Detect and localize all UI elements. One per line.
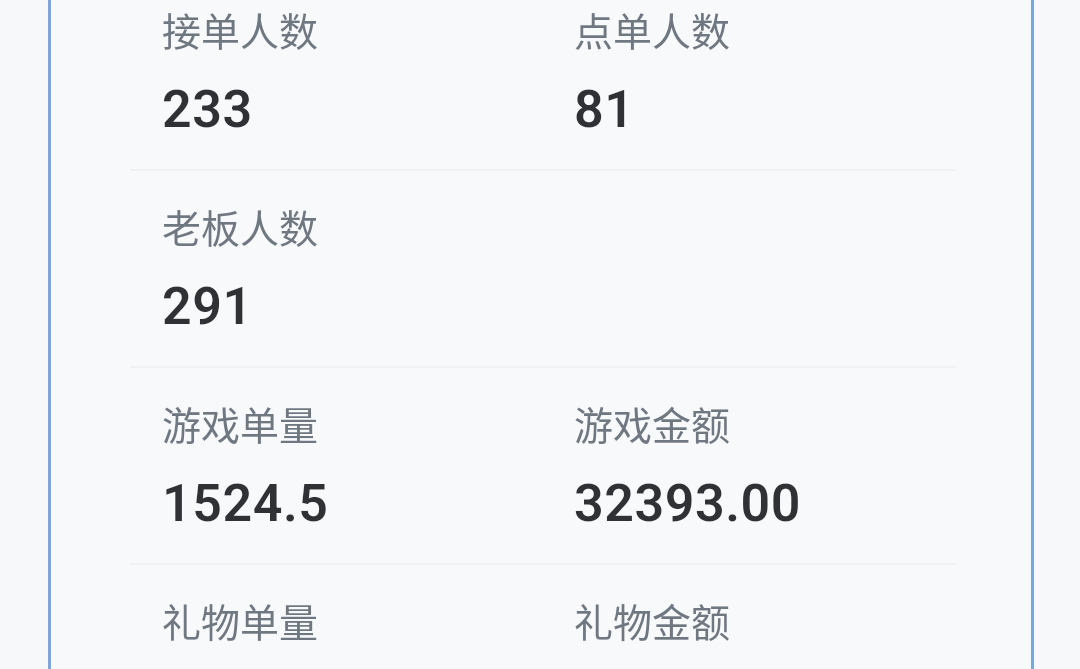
button[interactable]: 老板人数 — [162, 197, 562, 359]
staticText: 礼物单量 — [162, 592, 319, 648]
staticText: 游戏单量 — [162, 395, 319, 451]
staticText: 游戏金额 — [574, 395, 731, 451]
staticText: 老板人数 — [162, 198, 319, 254]
staticText: 1524.5 — [162, 473, 329, 534]
staticText: 点单人数 — [574, 1, 731, 57]
button[interactable]: 点单人数 — [574, 0, 974, 162]
staticText: 32393.00 — [574, 473, 802, 534]
button[interactable]: 礼物金额 — [574, 591, 974, 669]
staticText: 233 — [162, 79, 253, 140]
button[interactable]: 游戏金额 — [574, 394, 974, 556]
button[interactable]: 礼物单量 — [162, 591, 562, 669]
button[interactable]: 游戏单量 — [162, 394, 562, 556]
staticText: 接单人数 — [162, 1, 319, 57]
button[interactable]: 接单人数 — [162, 0, 562, 162]
staticText: 礼物金额 — [574, 592, 731, 648]
staticText: 81 — [574, 79, 635, 140]
staticText: 291 — [162, 276, 253, 337]
